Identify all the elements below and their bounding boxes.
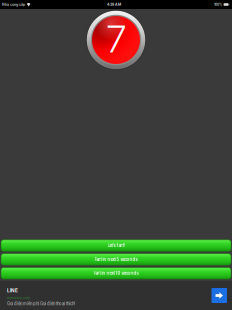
staticText: Gọi điện miễn phí Gọi điện thoại thích! <box>7 301 75 306</box>
staticText: 100% <box>214 3 222 6</box>
staticText: Fart in next 5 seconds <box>94 257 137 262</box>
button[interactable]: LINE advert <box>0 281 232 310</box>
button[interactable]: Let's fart! <box>1 240 231 251</box>
staticText: 4:39 AM <box>107 2 121 7</box>
staticText: www.xxx.com <box>7 296 30 300</box>
button[interactable]: Fart in next 5 seconds <box>1 254 231 265</box>
staticText: Fart in next 10 seconds <box>93 271 138 276</box>
button[interactable]: Fart in next 10 seconds <box>1 268 231 279</box>
staticText: LINE <box>7 288 18 293</box>
staticText: Nhà cung cấp <box>2 2 25 7</box>
staticText: Let's fart! <box>107 243 124 248</box>
button[interactable]: Fart countdown, 7 <box>86 10 146 70</box>
staticText: 7 <box>106 16 126 62</box>
